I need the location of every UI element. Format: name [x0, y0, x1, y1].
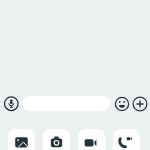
- button[interactable]: [132, 96, 148, 112]
- button[interactable]: [78, 129, 105, 150]
- button[interactable]: [43, 129, 70, 150]
- button[interactable]: [3, 95, 20, 112]
- button[interactable]: [8, 129, 35, 150]
- button[interactable]: [113, 129, 140, 150]
- button[interactable]: [114, 96, 130, 112]
- button[interactable]: [22, 96, 110, 111]
